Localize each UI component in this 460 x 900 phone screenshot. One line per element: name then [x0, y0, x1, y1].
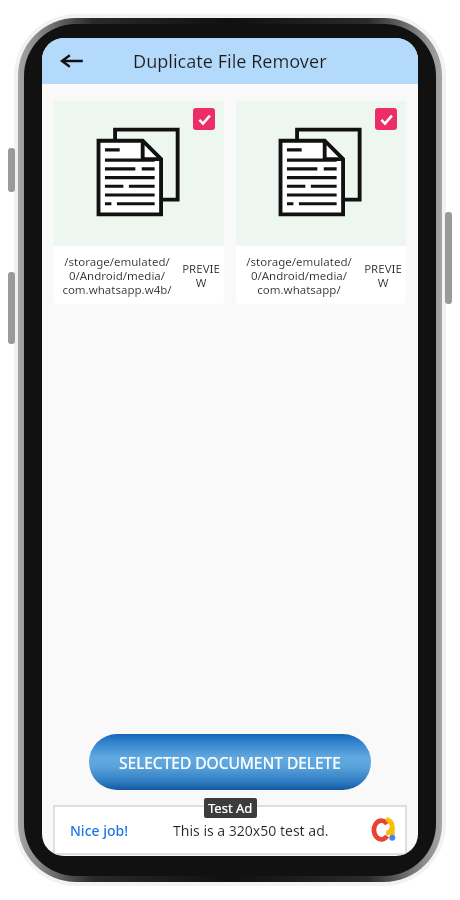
staticText: /storage/emulated/ 0/Android/media/ com.…: [56, 254, 178, 297]
staticText: /storage/emulated/ 0/Android/media/ com.…: [238, 254, 360, 297]
button[interactable]: PREVIEW: [178, 261, 224, 290]
button[interactable]: Selected: [193, 108, 215, 130]
button[interactable]: Nice job!: [54, 806, 406, 854]
button[interactable]: Selected: [375, 108, 397, 130]
button[interactable]: SELECTED DOCUMENT DELETE: [89, 734, 371, 790]
staticText: Test Ad: [208, 799, 253, 817]
staticText: PREVIEW: [178, 261, 224, 290]
staticText: SELECTED DOCUMENT DELETE: [119, 752, 341, 773]
button[interactable]: PREVIEW: [360, 261, 406, 290]
button[interactable]: Back: [52, 41, 92, 81]
staticText: This is a 320x50 test ad.: [173, 821, 329, 840]
staticText: PREVIEW: [360, 261, 406, 290]
button[interactable]: Selected: [236, 101, 406, 304]
staticText: Nice job!: [70, 821, 129, 840]
button[interactable]: Selected: [54, 101, 224, 304]
staticText: Duplicate File Remover: [133, 49, 327, 74]
